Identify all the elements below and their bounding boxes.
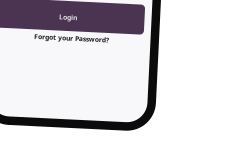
button[interactable]: Forgot your Password? xyxy=(0,31,150,48)
staticText: Forgot your Password? xyxy=(34,34,109,43)
staticText: Login xyxy=(58,13,76,22)
